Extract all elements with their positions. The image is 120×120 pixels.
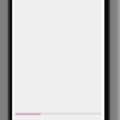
other: Page loading progress [0, 0, 120, 120]
button[interactable]: Page content [0, 0, 120, 120]
